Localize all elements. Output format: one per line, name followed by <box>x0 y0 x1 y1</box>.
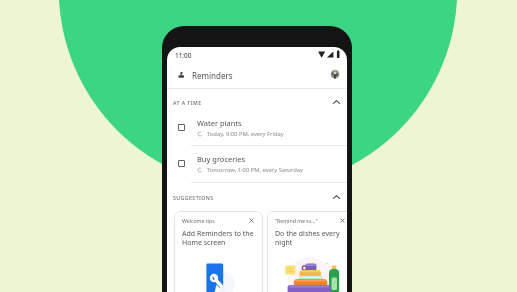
staticText: Reminders <box>192 70 233 81</box>
staticText: Tomorrow, 1:00 PM, every Saturday <box>207 166 303 174</box>
button[interactable]: Account <box>330 69 340 79</box>
staticText: Add Reminders to the Home screen <box>182 229 254 247</box>
button[interactable]: Reminders <box>173 67 189 83</box>
staticText: Today, 9:00 PM, every Friday <box>207 130 284 138</box>
button[interactable]: "Remind me to..." <box>267 211 347 292</box>
button[interactable]: Welcome tips <box>174 211 263 292</box>
staticText: SUGGESTIONS <box>173 194 214 201</box>
staticText: AT A TIME <box>173 99 202 106</box>
button[interactable]: Water plants <box>174 117 340 147</box>
staticText: Welcome tips <box>182 217 215 224</box>
button[interactable]: Buy groceries <box>174 153 340 183</box>
staticText: Water plants <box>197 118 242 128</box>
staticText: 11:00 <box>175 51 192 60</box>
staticText: "Remind me to..." <box>275 217 318 224</box>
button[interactable]: AT A TIME <box>173 95 341 109</box>
staticText: Do the dishes every night <box>275 229 340 247</box>
staticText: Buy groceries <box>197 154 246 164</box>
button[interactable]: SUGGESTIONS <box>173 190 341 204</box>
